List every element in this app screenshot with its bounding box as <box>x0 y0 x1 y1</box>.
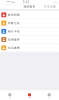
button[interactable]: 生活缴费 <box>0 44 59 52</box>
button[interactable]: 常见问题 <box>43 4 57 9</box>
button[interactable]: 首页 <box>0 90 20 100</box>
staticText: 银行卡包 <box>8 30 20 33</box>
staticText: 账单明细 <box>8 13 20 16</box>
staticText: •••• <box>6 0 10 4</box>
staticText: › <box>56 20 57 26</box>
button[interactable]: 服务 <box>20 90 39 100</box>
staticText: 中国移动 <box>11 1 15 3</box>
staticText: 常见问题 <box>44 5 56 8</box>
staticText: 100% <box>53 1 57 3</box>
button[interactable]: 转账汇款 <box>0 19 59 27</box>
staticText: 我的 <box>48 97 50 98</box>
staticText: › <box>56 45 57 50</box>
staticText: 我的服务 <box>23 5 35 8</box>
button[interactable]: 账单明细 <box>0 11 59 19</box>
staticText: 生活缴费 <box>8 46 20 49</box>
button[interactable]: 银行卡包 <box>0 27 59 35</box>
staticText: › <box>56 37 57 42</box>
staticText: 转账汇款 <box>8 21 20 25</box>
button[interactable]: 我的 <box>39 90 59 100</box>
staticText: › <box>56 12 57 17</box>
staticText: 信用服务 <box>8 38 20 41</box>
button[interactable]: 信用服务 <box>0 35 59 44</box>
staticText: › <box>56 29 57 34</box>
staticText: 9:41 <box>23 0 30 4</box>
staticText: 服务 <box>28 97 30 98</box>
